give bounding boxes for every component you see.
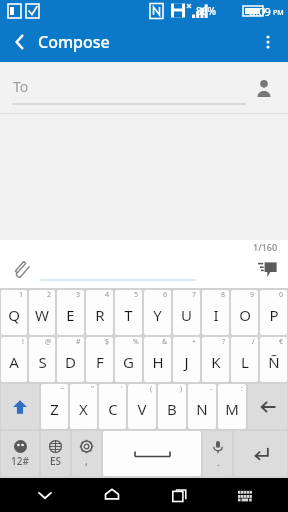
staticText: # [76, 337, 81, 347]
staticText: ) [180, 384, 183, 394]
button[interactable]: : [218, 384, 246, 429]
button[interactable]: ? [202, 337, 229, 382]
staticText: € [279, 337, 284, 347]
staticText: U [181, 305, 192, 325]
button[interactable]: Recent apps [158, 478, 202, 512]
staticText: 9 [250, 290, 255, 300]
button[interactable]: 3 [57, 290, 84, 335]
button[interactable]: / [231, 337, 258, 382]
staticText: M [225, 399, 239, 419]
staticText: Q [8, 305, 20, 325]
staticText: 6:09 [249, 4, 271, 19]
button[interactable]: ) [158, 384, 186, 429]
button[interactable]: Attach [4, 252, 38, 286]
staticText: ' [121, 384, 123, 394]
button[interactable]: Symbols [1, 431, 39, 476]
staticText: V [137, 399, 147, 419]
staticText: T [124, 305, 133, 325]
staticText: N [196, 399, 208, 419]
staticText: 0 [279, 290, 284, 300]
button[interactable]: Backspace [248, 384, 287, 429]
button[interactable]: Settings [72, 431, 101, 476]
button[interactable]: Language [41, 431, 70, 476]
staticText: W [35, 305, 49, 325]
staticText: + [192, 337, 197, 347]
button[interactable]: Voice input [203, 431, 232, 476]
button[interactable]: @ [29, 337, 55, 382]
button[interactable]: ( [128, 384, 156, 429]
button[interactable]: Switch keyboard [225, 478, 265, 512]
staticText: S [38, 352, 47, 372]
button[interactable]: Back [23, 478, 67, 512]
staticText: 12# [11, 454, 29, 468]
button[interactable]: ' [99, 384, 126, 429]
staticText: R [95, 305, 105, 325]
staticText: , [85, 454, 88, 468]
staticText: 86% [196, 4, 216, 18]
staticText: A [9, 352, 19, 372]
button[interactable]: " [70, 384, 97, 429]
button[interactable]: 5 [115, 290, 142, 335]
staticText: % [133, 337, 139, 347]
staticText: D [65, 352, 76, 372]
staticText: O [239, 305, 251, 325]
button[interactable]: Back [0, 22, 40, 62]
button[interactable]: - [188, 384, 216, 429]
button[interactable]: Space [103, 431, 201, 476]
staticText: B [167, 399, 177, 419]
staticText: L [241, 352, 249, 372]
staticText: 4 [105, 290, 110, 300]
staticText: & [162, 337, 168, 347]
button[interactable]: 8 [202, 290, 229, 335]
button[interactable]: + [173, 337, 200, 382]
staticText: K [211, 352, 221, 372]
staticText: 2 [47, 290, 52, 300]
staticText: PM [273, 8, 284, 18]
button[interactable]: Home [90, 478, 134, 512]
staticText: - [210, 384, 213, 394]
staticText: E [66, 305, 75, 325]
staticText: ! [22, 337, 24, 347]
button[interactable]: 2 [29, 290, 55, 335]
staticText: 5 [134, 290, 139, 300]
staticText: : [241, 384, 243, 394]
button[interactable]: & [144, 337, 171, 382]
button[interactable]: 9 [231, 290, 258, 335]
staticText: To [13, 77, 29, 96]
staticText: @ [45, 337, 52, 347]
staticText: Z [50, 399, 59, 419]
button[interactable]: Send [250, 251, 284, 285]
button[interactable]: 6 [144, 290, 171, 335]
staticText: Compose [38, 31, 110, 53]
staticText: $ [105, 337, 110, 347]
button[interactable]: Shift [1, 384, 39, 429]
staticText: / [252, 337, 255, 347]
staticText: 8 [221, 290, 226, 300]
staticText: C [108, 399, 118, 419]
staticText: " [91, 384, 94, 394]
button[interactable]: $ [86, 337, 113, 382]
button[interactable]: More options [248, 22, 288, 62]
button[interactable]: 0 [260, 290, 287, 335]
button[interactable]: 7 [173, 290, 200, 335]
button[interactable]: # [57, 337, 84, 382]
staticText: Ñ [268, 352, 280, 372]
staticText: ? [222, 337, 226, 347]
button[interactable]: ~ [41, 384, 68, 429]
staticText: F [96, 352, 104, 372]
button[interactable]: ! [1, 337, 27, 382]
button[interactable]: Add contact [248, 72, 280, 104]
staticText: Y [153, 305, 162, 325]
staticText: ES [50, 454, 62, 468]
staticText: 7 [192, 290, 197, 300]
button[interactable]: € [260, 337, 287, 382]
button[interactable]: 4 [86, 290, 113, 335]
button[interactable]: Enter [234, 431, 287, 476]
button[interactable]: 1 [1, 290, 27, 335]
staticText: 1 [19, 290, 24, 300]
staticText: ~ [60, 384, 65, 394]
staticText: P [269, 305, 279, 325]
button[interactable]: % [115, 337, 142, 382]
staticText: 1/160 [253, 241, 278, 253]
staticText: J [184, 352, 189, 372]
